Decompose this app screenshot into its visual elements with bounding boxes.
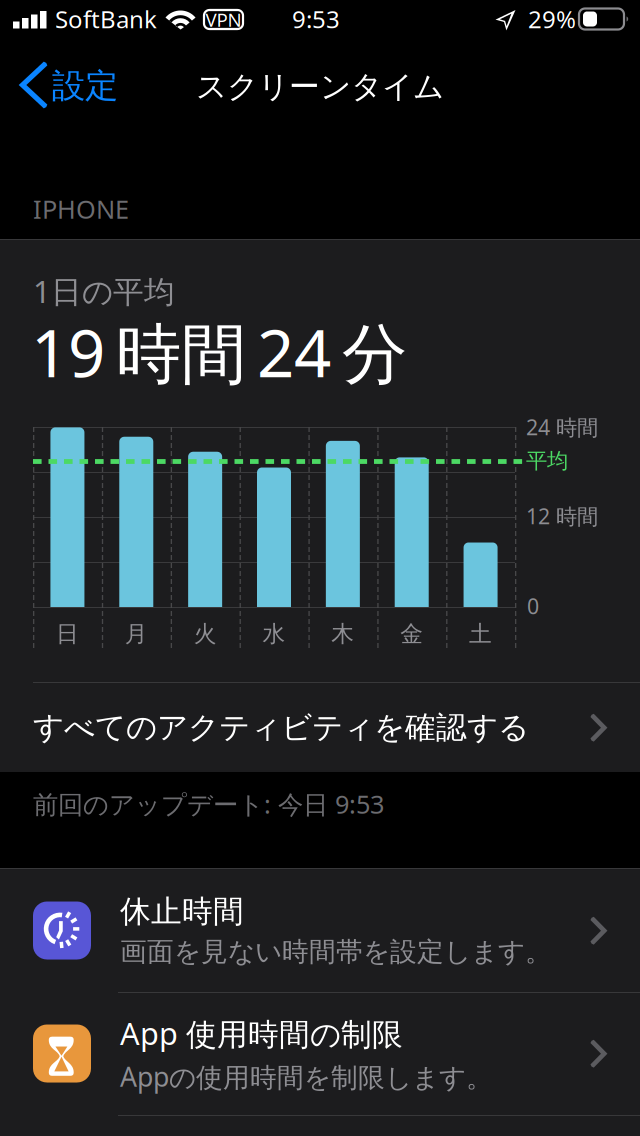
- button[interactable]: 設定: [0, 53, 175, 119]
- staticText: 24 時間: [526, 413, 598, 441]
- staticText: 画面を見ない時間帯を設定します。: [120, 935, 552, 968]
- button[interactable]: App 使用時間の制限: [0, 992, 640, 1115]
- button[interactable]: 休止時間: [0, 869, 640, 992]
- staticText: 木: [331, 620, 354, 648]
- staticText: IPHONE: [33, 192, 129, 226]
- staticText: 前回のアップデート: 今日 9:53: [33, 787, 384, 821]
- staticText: 9:53: [292, 3, 340, 35]
- staticText: 19 時間 24 分: [31, 309, 407, 395]
- staticText: SoftBank: [55, 3, 157, 35]
- staticText: 日: [56, 620, 79, 648]
- staticText: 月: [125, 620, 148, 648]
- staticText: 29%: [528, 3, 576, 35]
- staticText: 休止時間: [120, 893, 244, 930]
- staticText: 1日の平均: [33, 271, 175, 311]
- staticText: 火: [194, 620, 217, 648]
- staticText: App 使用時間の制限: [120, 1013, 403, 1054]
- staticText: 土: [469, 620, 492, 648]
- button[interactable]: すべてのアクティビティを確認する: [0, 683, 640, 772]
- staticText: Appの使用時間を制限します。: [120, 1059, 493, 1094]
- staticText: 金: [400, 620, 423, 648]
- staticText: 12 時間: [526, 502, 598, 530]
- staticText: VPN: [205, 7, 241, 32]
- staticText: すべてのアクティビティを確認する: [33, 709, 529, 746]
- staticText: 平均: [526, 448, 568, 474]
- staticText: 0: [527, 592, 539, 620]
- staticText: 設定: [52, 65, 118, 106]
- staticText: スクリーンタイム: [196, 68, 444, 106]
- staticText: 水: [262, 620, 285, 648]
